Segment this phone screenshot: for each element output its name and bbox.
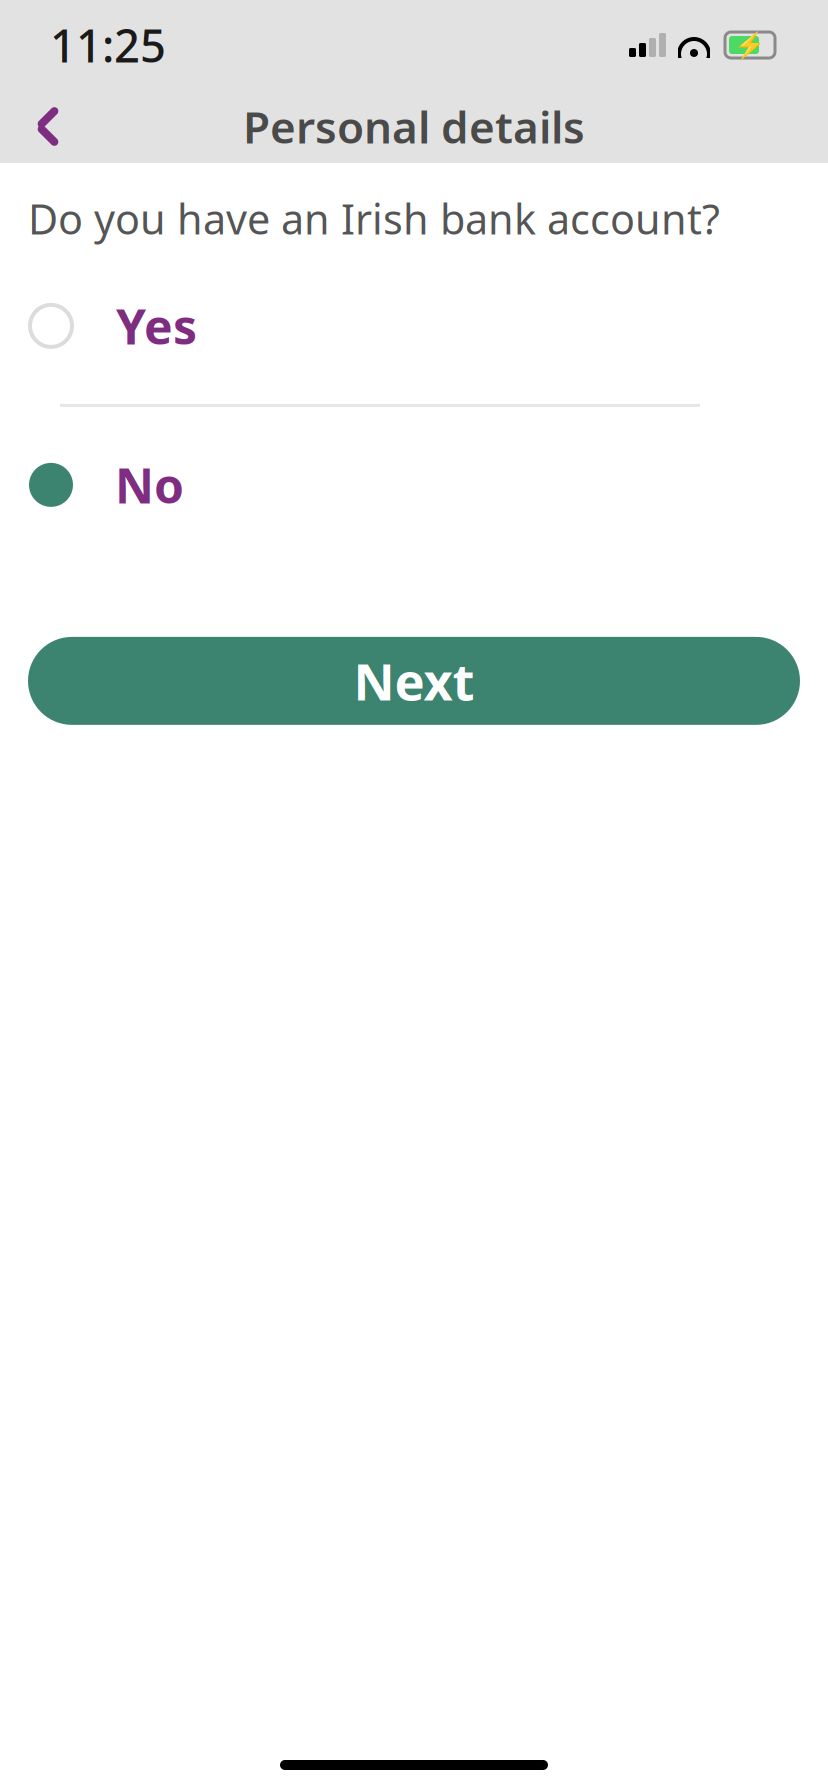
button[interactable]: No: [0, 445, 828, 525]
staticText: 11:25: [50, 15, 166, 75]
staticText: Next: [353, 647, 474, 714]
staticText: Yes: [116, 294, 197, 358]
staticText: Do you have an Irish bank account?: [28, 191, 720, 246]
staticText: No: [115, 453, 184, 517]
button[interactable]: Yes: [0, 286, 828, 366]
staticText: ⚡: [734, 30, 766, 59]
button[interactable]: Back: [12, 90, 84, 162]
staticText: Personal details: [243, 97, 585, 156]
button[interactable]: Next: [28, 637, 800, 725]
